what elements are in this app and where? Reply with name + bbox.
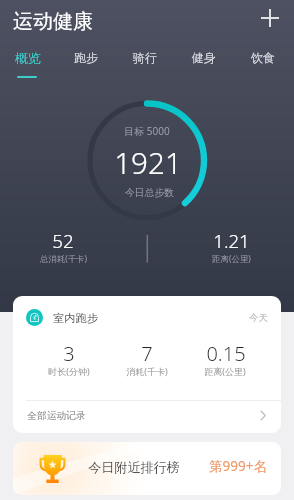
button[interactable] [60,44,112,80]
button[interactable] [20,230,106,268]
staticText: 1921 [114,142,182,182]
staticText: 1.21 [213,228,250,253]
staticText: 概览 [15,50,41,66]
staticText: 距离(公里) [204,365,246,377]
staticText: 今日附近排行榜 [88,459,180,476]
staticText: 跑步 [74,50,98,65]
staticText: 时长(分钟) [48,365,90,377]
staticText: 3 [63,340,75,367]
staticText: 消耗(千卡) [126,365,168,377]
staticText: 今天 [249,312,268,324]
staticText: 总消耗(千卡) [40,253,87,264]
button[interactable] [13,442,281,495]
staticText: 运动健康 [13,9,93,34]
staticText: 饮食 [251,50,275,65]
button[interactable] [2,44,54,80]
staticText: 距离(公里) [212,253,251,264]
staticText: 骑行 [133,50,157,65]
button[interactable] [6,4,106,38]
button[interactable]: Add [255,3,285,33]
button[interactable] [119,44,171,80]
button[interactable] [178,44,230,80]
button[interactable] [237,44,289,80]
staticText: 52 [52,228,74,253]
staticText: 室内跑步 [53,311,98,325]
staticText: 第999+名 [209,457,267,475]
staticText: 今日总步数 [125,187,174,199]
button[interactable] [13,402,281,433]
button[interactable] [13,300,281,334]
staticText: 全部运动记录 [27,410,86,422]
staticText: 健身 [192,50,216,65]
staticText: 0.15 [206,340,246,367]
staticText: 目标 5000 [124,124,170,138]
button[interactable] [188,230,274,268]
staticText: 7 [141,340,153,367]
